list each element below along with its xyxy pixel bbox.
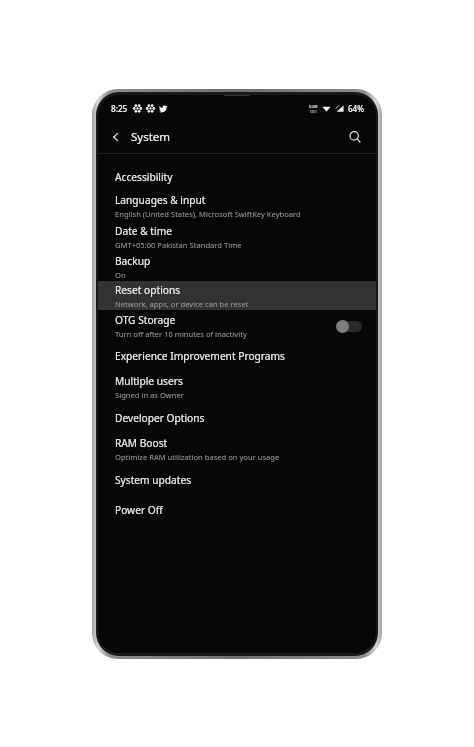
button[interactable]: Search [344, 126, 366, 148]
staticText: System [131, 129, 171, 145]
other: Back [109, 130, 123, 144]
staticText: Multiple users [115, 374, 183, 388]
staticText: KB/S [310, 110, 317, 114]
button[interactable]: OTG Storage [98, 310, 376, 341]
staticText: Accessibility [115, 170, 173, 184]
staticText: RAM Boost [115, 436, 168, 450]
button[interactable]: Developer Options [98, 402, 376, 433]
staticText: 8:25 [111, 103, 128, 114]
staticText: Developer Options [115, 411, 205, 425]
button[interactable]: RAM Boost [98, 433, 376, 464]
staticText: 64% [348, 103, 364, 114]
staticText: English (United States), Microsoft Swift… [115, 209, 301, 219]
staticText: 0.00 [309, 104, 318, 110]
button[interactable]: Experience Improvement Programs [98, 341, 376, 371]
button[interactable]: Back [98, 123, 179, 151]
staticText: Signed in as Owner [115, 390, 184, 400]
button[interactable]: Languages & input [98, 190, 376, 221]
staticText: System updates [115, 473, 192, 487]
button[interactable]: Date & time [98, 221, 376, 252]
staticText: Network, apps, or device can be reset [115, 299, 249, 309]
staticText: Languages & input [115, 193, 206, 207]
staticText: OTG Storage [115, 313, 176, 327]
button[interactable]: Accessibility [98, 163, 376, 190]
staticText: GMT+05:00 Pakistan Standard Time [115, 240, 242, 250]
button[interactable]: OTG Storage toggle [336, 319, 362, 333]
button[interactable]: System updates [98, 464, 376, 495]
button[interactable]: Power Off [98, 495, 376, 525]
button[interactable]: Reset options [98, 281, 376, 310]
staticText: Reset options [115, 283, 181, 297]
staticText: On [115, 270, 126, 280]
staticText: Power Off [115, 503, 163, 517]
button[interactable]: Backup [98, 252, 376, 281]
staticText: Optimize RAM utilization based on your u… [115, 452, 280, 462]
staticText: Turn off after 10 minutes of inactivity [115, 329, 247, 339]
staticText: Backup [115, 254, 151, 268]
staticText: Date & time [115, 224, 172, 238]
button[interactable]: Multiple users [98, 371, 376, 402]
staticText: Experience Improvement Programs [115, 349, 285, 363]
